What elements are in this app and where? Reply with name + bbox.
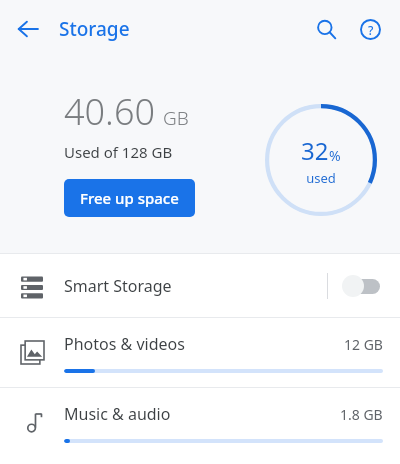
staticText: 40.60	[64, 87, 156, 136]
button[interactable]: Help	[348, 7, 392, 51]
staticText: Music & audio	[64, 403, 171, 425]
staticText: Storage	[59, 16, 130, 42]
staticText: used	[306, 169, 336, 187]
staticText: GB	[163, 105, 189, 131]
button[interactable]: Back	[6, 7, 50, 51]
staticText: 12 GB	[344, 335, 383, 354]
staticText: Smart Storage	[64, 275, 172, 297]
staticText: Photos & videos	[64, 333, 185, 355]
button[interactable]: Search	[304, 7, 348, 51]
button[interactable]: Smart Storage	[0, 254, 400, 317]
button[interactable]: Free up space	[64, 179, 195, 217]
staticText: ?	[368, 22, 374, 38]
staticText: %	[329, 146, 341, 165]
staticText: 1.8 GB	[340, 405, 383, 424]
button[interactable]: Smart Storage toggle	[342, 271, 384, 301]
staticText: Used of 128 GB	[64, 142, 173, 162]
button[interactable]: Music & audio	[0, 388, 400, 457]
button[interactable]: Photos & videos	[0, 318, 400, 387]
staticText: Free up space	[80, 188, 179, 208]
staticText: 32	[301, 134, 329, 167]
